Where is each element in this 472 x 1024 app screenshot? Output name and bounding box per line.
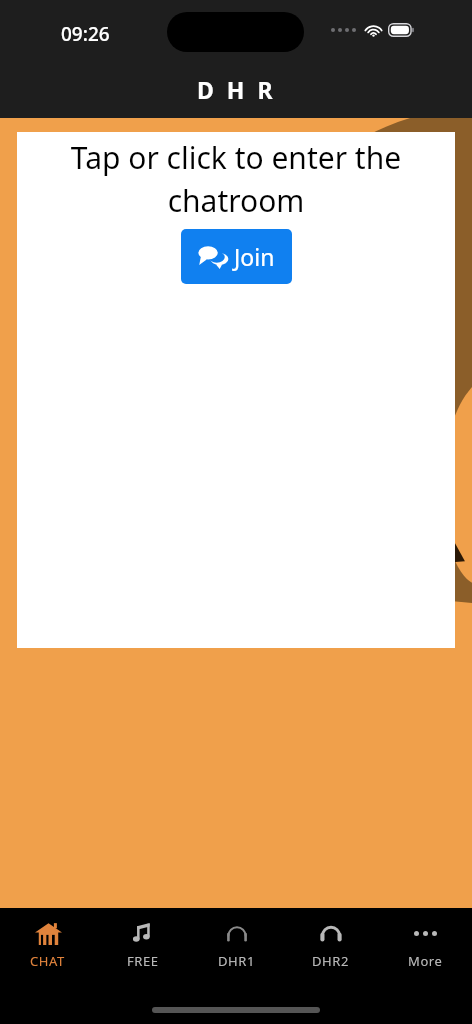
button[interactable]: FREE	[95, 915, 190, 973]
button[interactable]: DHR1	[190, 915, 284, 973]
staticText: DHR1	[218, 952, 256, 970]
button[interactable]: DHR2	[284, 915, 378, 973]
staticText: Join	[234, 241, 275, 272]
staticText: Tap or click to enter the chatroom	[25, 137, 447, 221]
staticText: 09:26	[61, 21, 110, 47]
staticText: DHR2	[312, 952, 350, 970]
staticText: More	[408, 952, 443, 970]
staticText: D H R	[197, 74, 276, 105]
button[interactable]: CHAT	[0, 915, 95, 973]
staticText: CHAT	[30, 952, 65, 970]
staticText: FREE	[127, 952, 159, 970]
button[interactable]: More	[378, 915, 472, 973]
button[interactable]: Tap or click to enter the chatroom	[17, 132, 455, 648]
button[interactable]: Join	[181, 229, 292, 284]
